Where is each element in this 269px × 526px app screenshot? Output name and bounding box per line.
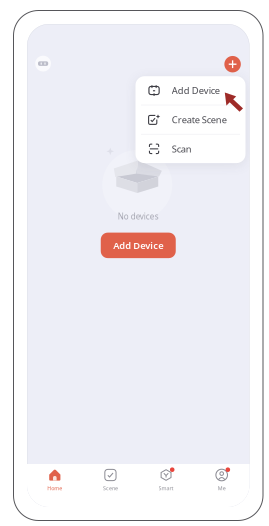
button[interactable]: Add Device xyxy=(135,76,245,105)
button[interactable]: Home xyxy=(27,464,83,507)
button[interactable]: Home selector xyxy=(35,55,52,72)
staticText: No devices xyxy=(118,211,159,222)
button[interactable]: Scene xyxy=(83,464,138,507)
staticText: Add Device xyxy=(172,84,220,97)
button[interactable]: Create Scene xyxy=(135,105,245,134)
staticText: Scene xyxy=(103,485,118,492)
button[interactable]: Me xyxy=(194,464,249,507)
staticText: Home xyxy=(47,485,62,492)
button[interactable]: Scan xyxy=(135,135,245,163)
button[interactable]: Add xyxy=(224,55,242,73)
staticText: Create Scene xyxy=(172,113,227,126)
staticText: Add Device xyxy=(113,239,163,252)
staticText: Scan xyxy=(172,143,192,155)
button[interactable]: Add Device xyxy=(101,233,176,258)
staticText: Me xyxy=(218,485,226,492)
staticText: Smart xyxy=(159,485,174,492)
button[interactable]: Smart xyxy=(138,464,194,507)
